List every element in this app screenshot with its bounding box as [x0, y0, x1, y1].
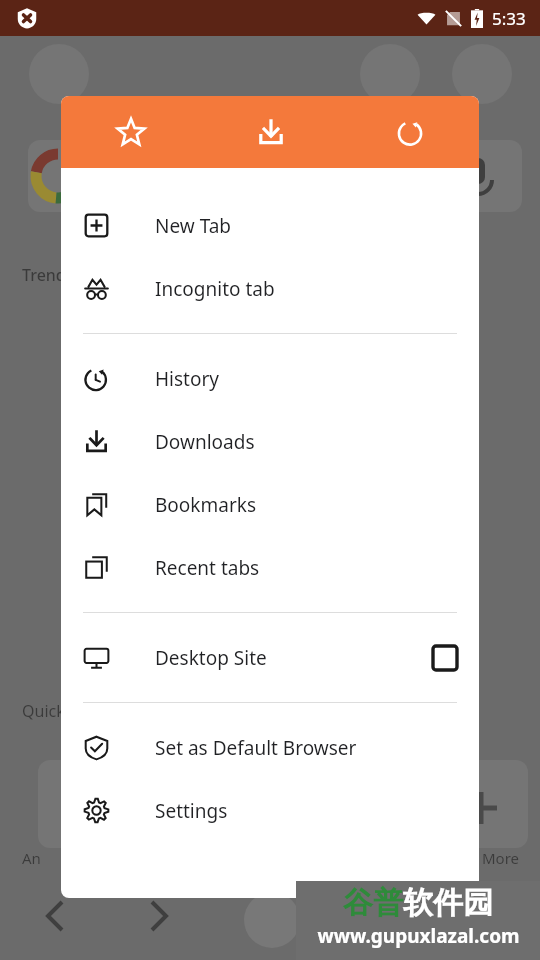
staticText: Quick — [22, 700, 65, 722]
staticText: Recent tabs — [155, 555, 260, 581]
button[interactable]: Downloads — [61, 410, 479, 473]
button[interactable]: Bookmarks — [61, 473, 479, 536]
button[interactable]: History — [61, 347, 479, 410]
staticText: More — [482, 848, 520, 868]
button[interactable]: Bookmark this page — [61, 96, 201, 168]
button[interactable]: Download page — [201, 96, 340, 168]
button[interactable]: Recent tabs — [61, 536, 479, 599]
staticText: Downloads — [155, 429, 255, 455]
button[interactable]: Settings — [61, 779, 479, 842]
staticText: Incognito tab — [155, 276, 275, 302]
staticText: Settings — [155, 798, 228, 824]
staticText: An — [22, 848, 41, 868]
button[interactable]: Incognito tab — [61, 257, 479, 320]
staticText: History — [155, 366, 219, 392]
button[interactable]: Reload page — [340, 96, 479, 168]
staticText: Bookmarks — [155, 492, 257, 518]
staticText: Trending — [22, 264, 91, 286]
button[interactable]: Set as Default Browser — [61, 716, 479, 779]
staticText: Set as Default Browser — [155, 735, 357, 761]
button[interactable]: Desktop Site — [61, 626, 479, 689]
staticText: New Tab — [155, 213, 232, 239]
staticText: Desktop Site — [155, 645, 267, 671]
staticText: 谷普 — [343, 884, 403, 922]
staticText: 5:33 — [492, 7, 526, 30]
button[interactable]: New Tab — [61, 194, 479, 257]
staticText: 软件园 — [403, 884, 493, 922]
staticText: www.gupuxlazal.com — [317, 923, 520, 949]
